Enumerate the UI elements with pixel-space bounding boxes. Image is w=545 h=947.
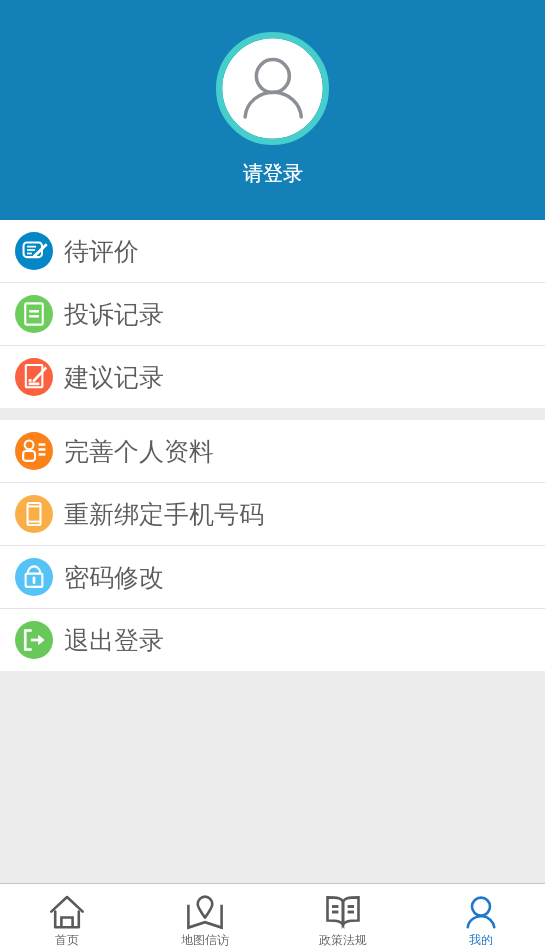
staticText: 请登录	[243, 161, 303, 186]
staticText: 投诉记录	[64, 299, 164, 330]
button[interactable]: 待评价	[0, 220, 545, 282]
button[interactable]: 建议记录	[0, 346, 545, 408]
button[interactable]: 首页	[0, 884, 136, 947]
button[interactable]: 政策法规	[274, 884, 412, 947]
staticText: 政策法规	[319, 932, 367, 947]
button[interactable]: 重新绑定手机号码	[0, 483, 545, 545]
button[interactable]: Avatar	[216, 32, 329, 145]
staticText: 我的	[469, 932, 493, 947]
button[interactable]: 投诉记录	[0, 283, 545, 345]
button[interactable]: 完善个人资料	[0, 420, 545, 482]
staticText: 完善个人资料	[64, 436, 214, 467]
button[interactable]: 密码修改	[0, 546, 545, 608]
staticText: 重新绑定手机号码	[64, 499, 264, 530]
staticText: 密码修改	[64, 562, 164, 593]
staticText: 退出登录	[64, 625, 164, 656]
staticText: 首页	[55, 932, 79, 947]
staticText: 建议记录	[64, 362, 164, 393]
button[interactable]: 地图信访	[136, 884, 274, 947]
staticText: 地图信访	[181, 932, 229, 947]
button[interactable]: 我的	[412, 884, 545, 947]
button[interactable]: 退出登录	[0, 609, 545, 671]
staticText: 待评价	[64, 236, 139, 267]
